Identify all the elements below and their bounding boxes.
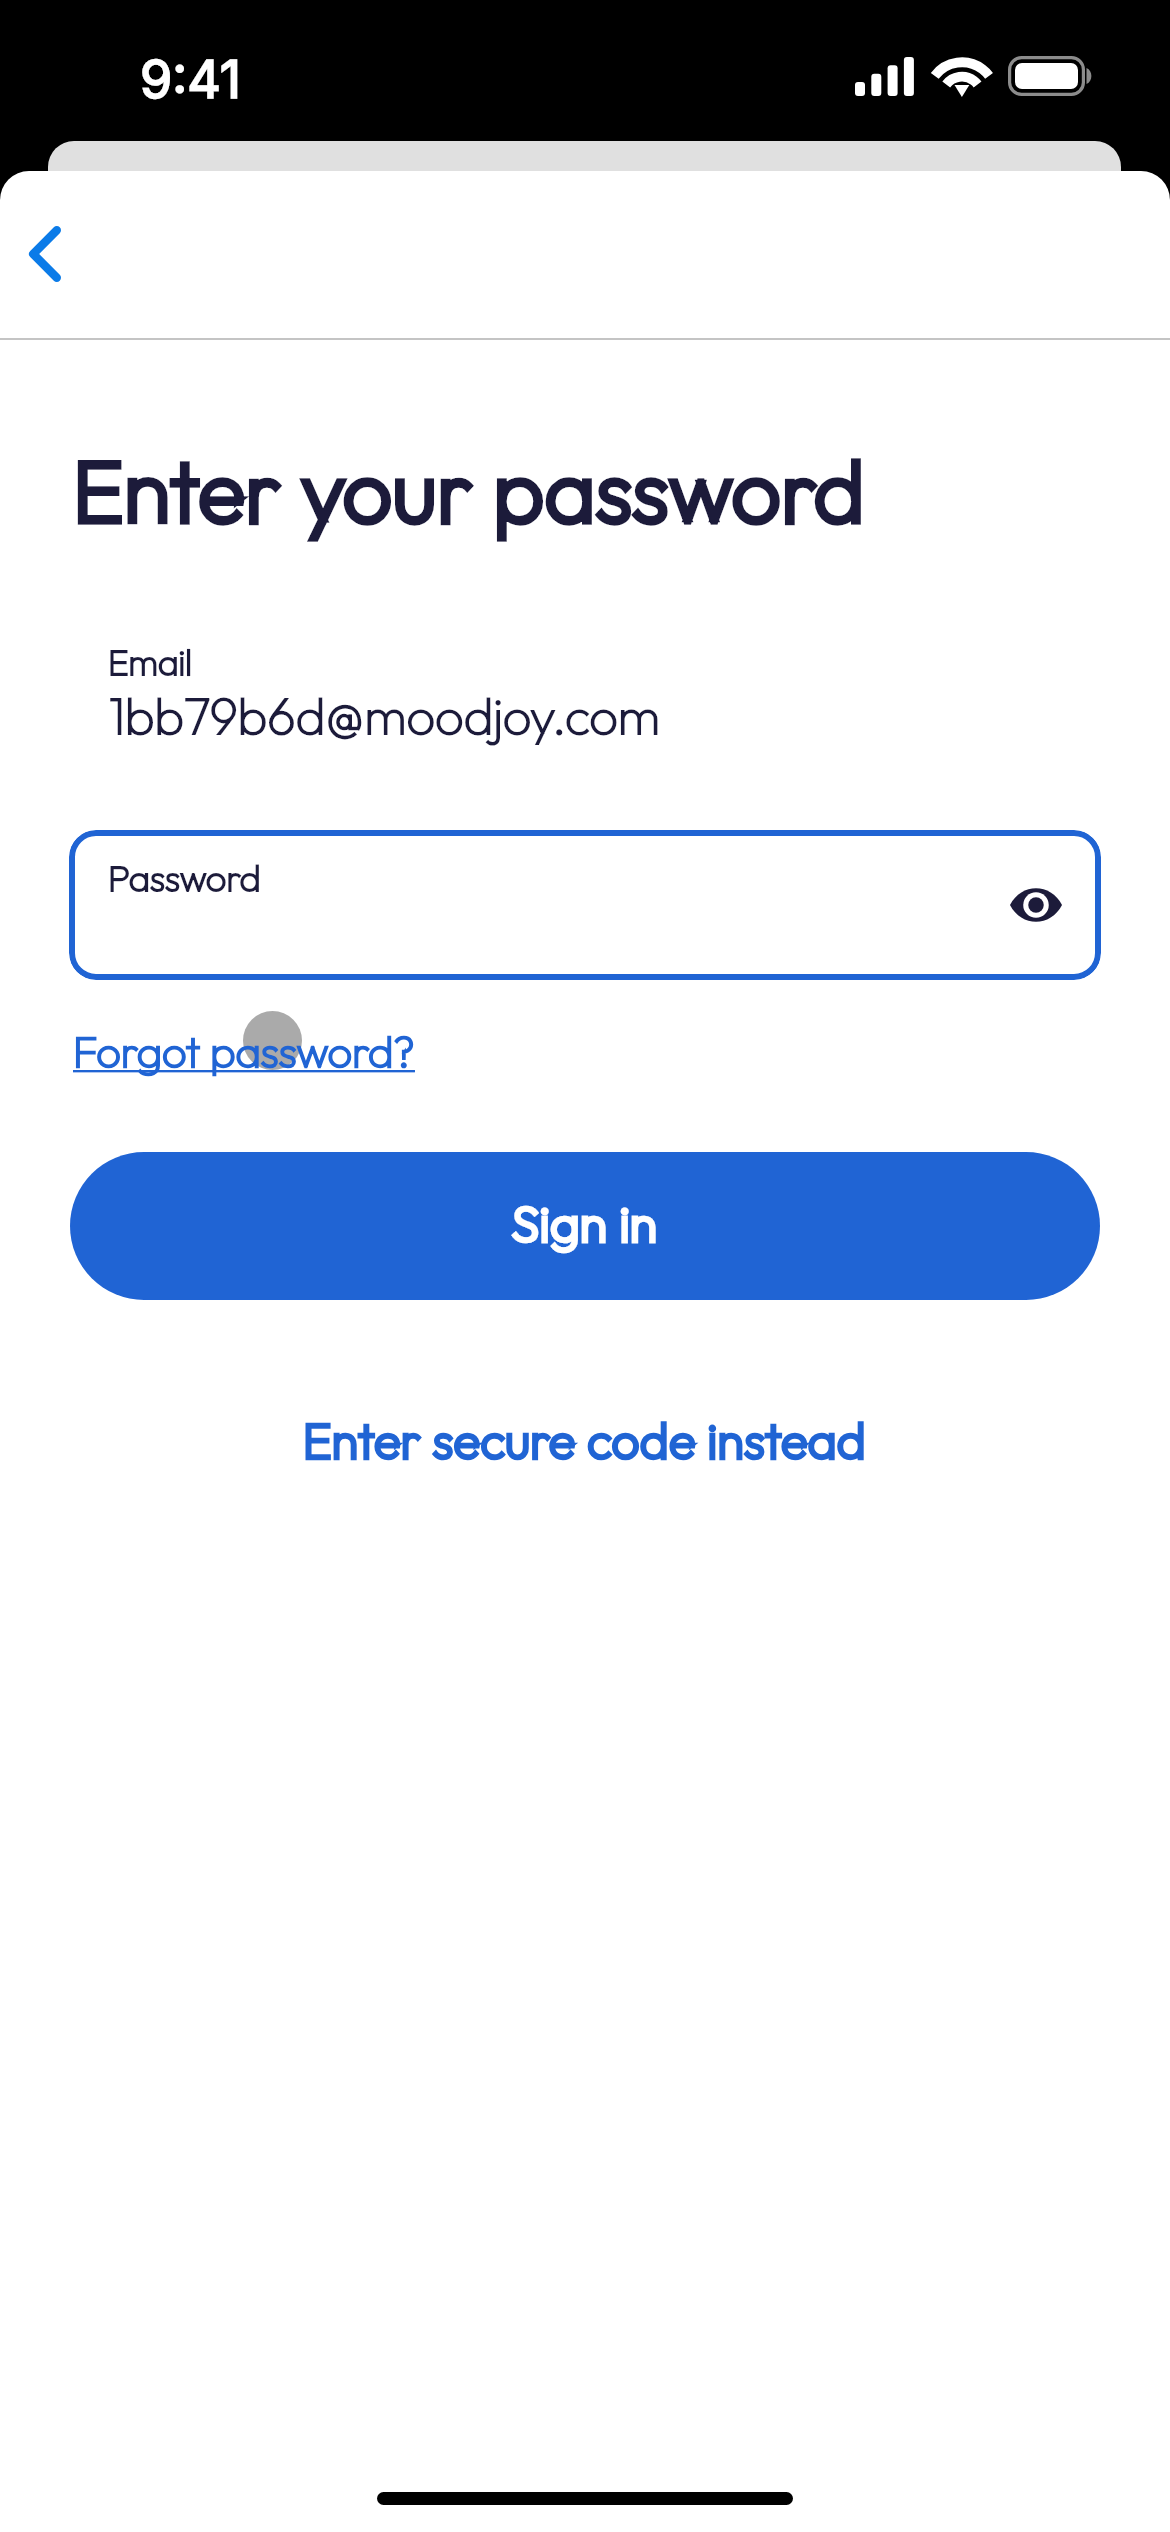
- staticText: Enter your password: [73, 436, 866, 543]
- button[interactable]: Sign in: [70, 1152, 1100, 1300]
- staticText: Enter secure code instead: [303, 1410, 867, 1470]
- staticText: 1bb79b6d@moodjoy.com: [109, 684, 660, 747]
- staticText: Email: [108, 640, 192, 684]
- staticText: 1bb79b6d@moodjoy.com: [109, 684, 660, 747]
- button[interactable]: Forgot password?: [73, 1024, 415, 1078]
- button[interactable]: Enter secure code instead: [303, 1410, 867, 1470]
- staticText: Password: [108, 855, 261, 900]
- staticText: Email: [108, 640, 192, 684]
- button[interactable]: Back: [0, 196, 92, 314]
- staticText: Enter your password: [73, 436, 866, 543]
- button[interactable]: [69, 830, 1101, 980]
- staticText: Sign in: [512, 1192, 658, 1254]
- staticText: Forgot password?: [73, 1024, 415, 1078]
- staticText: Sign in: [512, 1192, 658, 1254]
- button[interactable]: Show password: [986, 855, 1086, 955]
- staticText: Forgot password?: [73, 1024, 415, 1078]
- staticText: Password: [108, 855, 261, 900]
- staticText: 9:41: [140, 48, 241, 111]
- staticText: Enter secure code instead: [303, 1410, 867, 1470]
